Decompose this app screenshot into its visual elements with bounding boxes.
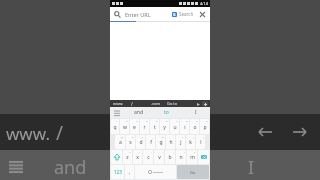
staticText: and — [134, 109, 143, 116]
button[interactable]: 9 — [190, 119, 199, 134]
staticText: u — [173, 124, 177, 131]
staticText: + — [182, 135, 184, 138]
staticText: m — [190, 154, 195, 161]
button[interactable]: Search — [113, 10, 122, 19]
staticText: www. — [113, 101, 124, 106]
button[interactable]: .com — [150, 101, 162, 106]
staticText: b — [168, 154, 172, 161]
staticText: 7 — [176, 119, 178, 122]
button[interactable]: 7 — [170, 119, 179, 134]
staticText: e — [133, 124, 136, 131]
button[interactable]: , — [125, 165, 134, 179]
staticText: ( — [193, 135, 194, 138]
button[interactable]: ' — [143, 150, 153, 164]
button[interactable]: 2 — [120, 119, 129, 134]
button[interactable]: Keyboard menu — [110, 107, 124, 118]
staticText: g — [159, 139, 163, 146]
button[interactable]: / — [129, 101, 135, 107]
button[interactable]: I — [181, 107, 210, 118]
staticText: " — [139, 150, 141, 153]
staticText: I — [195, 109, 197, 116]
staticText: - — [173, 135, 174, 138]
button[interactable]: 3 — [130, 119, 139, 134]
button[interactable]: @ — [115, 135, 125, 149]
button[interactable]: 8 — [180, 119, 189, 134]
button[interactable]: Go — [177, 165, 209, 179]
staticText: o — [193, 124, 197, 131]
button[interactable]: _ — [146, 135, 155, 149]
staticText: Enter URL — [125, 11, 151, 18]
button[interactable]: ) — [196, 135, 205, 149]
button[interactable]: G — [171, 11, 195, 17]
staticText: y — [163, 124, 166, 131]
staticText: ' — [151, 150, 152, 153]
staticText: h — [169, 139, 173, 146]
staticText: 4:14 — [200, 1, 208, 6]
staticText: $ — [142, 135, 144, 138]
staticText: I — [248, 155, 255, 180]
button[interactable]: & — [156, 135, 165, 149]
staticText: r — [143, 124, 146, 131]
button[interactable]: 6 — [160, 119, 169, 134]
staticText: c — [147, 154, 150, 161]
button[interactable]: 4 — [140, 119, 149, 134]
staticText: & — [162, 135, 164, 138]
button[interactable]: Space — [135, 165, 176, 179]
staticText: q — [113, 124, 117, 131]
button[interactable]: More — [202, 101, 208, 107]
staticText: / — [56, 120, 64, 146]
staticText: Search — [179, 11, 194, 17]
staticText: Go to — [167, 101, 178, 106]
staticText: www. — [6, 122, 50, 145]
staticText: ? — [194, 150, 196, 153]
staticText: G — [173, 12, 176, 17]
button[interactable]: ; — [165, 150, 175, 164]
staticText: 0 — [206, 119, 208, 122]
staticText: 6 — [166, 119, 168, 122]
staticText: .com — [151, 101, 161, 106]
button[interactable]: Close — [198, 10, 207, 19]
button[interactable]: * — [123, 150, 132, 164]
button[interactable]: www. — [112, 101, 125, 106]
staticText: i — [184, 124, 186, 131]
staticText: 3 — [136, 119, 138, 122]
staticText: , — [129, 169, 131, 176]
staticText: n — [179, 154, 183, 161]
button[interactable]: : — [154, 150, 164, 164]
button[interactable]: ? — [187, 150, 197, 164]
staticText: and — [54, 155, 87, 180]
staticText: 5 — [156, 119, 158, 122]
button[interactable]: $ — [136, 135, 145, 149]
button[interactable]: 0 — [200, 119, 209, 134]
button[interactable]: Enter URL — [125, 7, 171, 21]
button[interactable]: 5 — [150, 119, 159, 134]
staticText: x — [136, 154, 139, 161]
staticText: v — [158, 154, 161, 161]
staticText: s — [129, 139, 132, 146]
button[interactable]: 123 — [111, 165, 124, 179]
staticText: * — [129, 150, 131, 153]
staticText: / — [131, 101, 133, 107]
button[interactable]: ! — [176, 150, 186, 164]
staticText: 4 — [146, 119, 148, 122]
button[interactable]: and — [124, 107, 152, 118]
button[interactable]: ( — [186, 135, 195, 149]
staticText: : — [162, 150, 163, 153]
button[interactable]: " — [133, 150, 142, 164]
button[interactable]: Backspace — [198, 150, 209, 164]
button[interactable]: + — [176, 135, 185, 149]
staticText: d — [139, 139, 143, 146]
button[interactable]: # — [126, 135, 135, 149]
button[interactable]: Go — [195, 101, 201, 107]
staticText: k — [189, 139, 192, 146]
staticText: 123 — [114, 169, 122, 175]
button[interactable]: Shift — [111, 150, 122, 164]
staticText: a — [119, 139, 122, 146]
button[interactable]: 1 — [111, 119, 119, 134]
staticText: to — [164, 109, 169, 116]
button[interactable]: Go to — [166, 101, 179, 106]
staticText: Go — [190, 170, 196, 175]
button[interactable]: - — [166, 135, 175, 149]
button[interactable]: to — [152, 107, 181, 118]
